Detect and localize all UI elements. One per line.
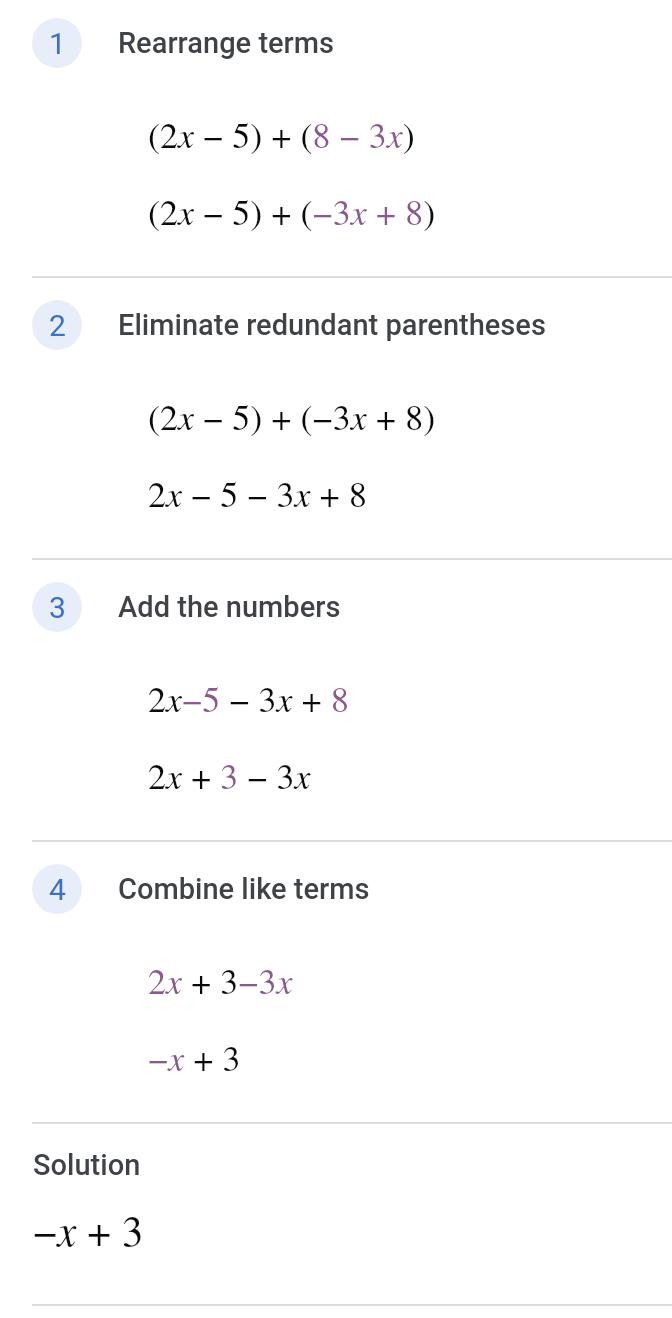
other: Step 4 (32, 864, 82, 914)
staticText: 2x−5 − 3x + 8 (148, 673, 349, 722)
button[interactable]: Step 2 (0, 282, 672, 564)
button[interactable]: Step 4 (0, 846, 672, 1128)
staticText: 2x + 3−3x (148, 955, 293, 1004)
staticText: Combine like terms (118, 872, 370, 906)
other: Step 2 (32, 300, 82, 350)
staticText: Eliminate redundant parentheses (118, 308, 546, 342)
button[interactable]: Solution (0, 1128, 672, 1318)
staticText: (2x − 5) + (8 − 3x) (148, 109, 415, 158)
staticText: Add the numbers (118, 590, 341, 624)
staticText: 2x + 3 − 3x (148, 750, 311, 799)
staticText: 2x − 5 − 3x + 8 (148, 468, 367, 517)
staticText: Solution (33, 1148, 141, 1182)
staticText: −x + 3 (148, 1032, 241, 1081)
staticText: (2x − 5) + (−3x + 8) (148, 391, 436, 440)
staticText: 3 (49, 590, 66, 625)
other: Step 3 (32, 582, 82, 632)
staticText: Rearrange terms (118, 26, 335, 60)
button[interactable]: Step 1 (0, 0, 672, 282)
staticText: 4 (49, 872, 66, 907)
staticText: (2x − 5) + (−3x + 8) (148, 186, 436, 235)
staticText: −x + 3 (33, 1200, 144, 1258)
button[interactable]: Step 3 (0, 564, 672, 846)
other: Step 1 (32, 18, 82, 68)
staticText: 1 (49, 26, 66, 61)
staticText: 2 (49, 308, 66, 343)
